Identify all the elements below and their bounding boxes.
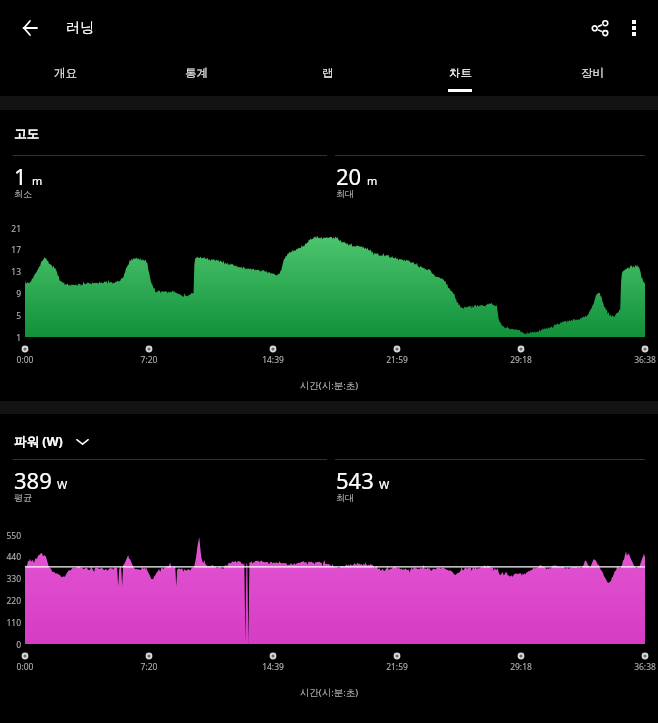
button[interactable]: Share [577,5,622,50]
button[interactable]: 통계 [131,55,262,96]
staticText: 389 [14,465,52,495]
button[interactable]: 개요 [0,55,131,96]
button[interactable]: 차트 [394,55,526,96]
staticText: 21:59 [372,354,422,366]
staticText: 러닝 [66,19,94,37]
staticText: W [57,477,68,492]
staticText: 330 [0,573,21,585]
staticText: 220 [0,595,21,607]
staticText: 9 [0,288,21,300]
staticText: 최대 [336,492,354,503]
staticText: 17 [0,244,21,256]
staticText: m [367,173,378,188]
staticText: 14:39 [248,354,298,366]
staticText: 29:18 [496,354,546,366]
staticText: 0:00 [0,661,50,673]
staticText: 7:20 [124,661,174,673]
staticText: 5 [0,310,21,322]
staticText: 21:59 [372,661,422,673]
staticText: 550 [0,530,21,542]
button[interactable]: Back [7,5,52,50]
staticText: 최소 [14,188,32,199]
staticText: m [32,173,43,188]
staticText: 개요 [54,66,77,80]
staticText: 장비 [581,66,604,80]
button[interactable]: 랩 [262,55,394,96]
button[interactable]: More options [611,5,656,50]
staticText: 13 [0,266,21,278]
button[interactable]: 장비 [526,55,658,96]
button[interactable]: Change metric [71,430,93,452]
staticText: 21 [0,223,21,235]
staticText: 20 [336,161,362,191]
staticText: 최대 [336,188,354,199]
staticText: 36:38 [620,354,658,366]
staticText: 14:39 [248,661,298,673]
staticText: 고도 [14,126,39,142]
staticText: 440 [0,551,21,563]
staticText: 시간(시:분:초) [0,686,658,699]
staticText: 543 [336,465,374,495]
staticText: 110 [0,617,21,629]
staticText: W [379,477,390,492]
staticText: 차트 [449,66,472,80]
staticText: 통계 [185,66,208,80]
staticText: 랩 [322,66,334,80]
staticText: 파워 (W) [14,433,63,450]
staticText: 36:38 [620,661,658,673]
staticText: 1 [0,332,21,344]
staticText: 0:00 [0,354,50,366]
staticText: 0 [0,639,21,651]
staticText: 시간(시:분:초) [0,379,658,392]
staticText: 1 [14,161,27,191]
staticText: 29:18 [496,661,546,673]
staticText: 평균 [14,492,32,503]
staticText: 7:20 [124,354,174,366]
